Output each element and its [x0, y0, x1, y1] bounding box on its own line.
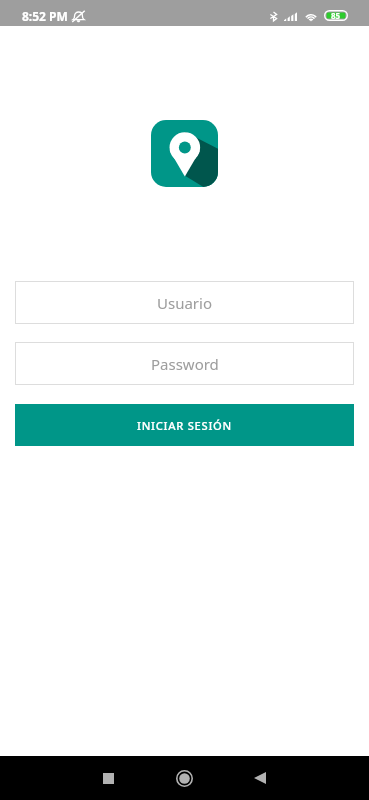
button[interactable]: Password [15, 342, 354, 385]
staticText: 8:52 PM [22, 8, 68, 24]
button[interactable]: Usuario [15, 281, 354, 324]
button[interactable]: Recents [86, 756, 130, 800]
staticText: INICIAR SESIÓN [137, 418, 233, 433]
staticText: 85 [331, 10, 341, 21]
button[interactable]: Back [238, 756, 282, 800]
staticText: Usuario [157, 293, 212, 313]
button[interactable]: INICIAR SESIÓN [15, 404, 354, 446]
staticText: Password [151, 354, 219, 374]
button[interactable]: Home [162, 756, 206, 800]
